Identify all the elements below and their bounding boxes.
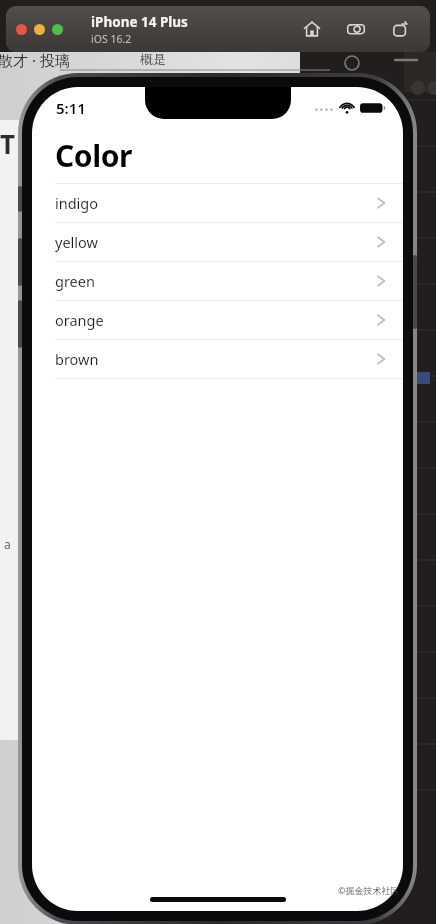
button[interactable]: yellow [32,223,403,261]
staticText: indigo [55,193,377,213]
staticText: 5:11 [56,98,86,118]
button[interactable]: Minimise [34,24,45,35]
staticText: orange [55,310,377,330]
button[interactable]: indigo [32,184,403,222]
button[interactable]: orange [32,301,403,339]
staticText: iPhone 14 Plus [91,13,188,31]
button[interactable]: brown [32,340,403,378]
staticText: Color [55,135,133,176]
staticText: brown [55,349,377,369]
button[interactable]: green [32,262,403,300]
button[interactable]: Screenshot [344,17,368,41]
button[interactable]: Home [300,17,324,41]
staticText: a [4,536,11,552]
staticText: yellow [55,232,377,252]
button[interactable]: Record [388,17,412,41]
staticText: 概是 [140,51,166,67]
button[interactable]: Close [16,24,27,35]
staticText: 散才 · 投璃 [0,50,70,70]
staticText: green [55,271,377,291]
staticText: ©掘金技术社区 [338,884,400,896]
button[interactable]: Maximise [52,24,63,35]
staticText: T [0,126,16,161]
staticText: iOS 16.2 [91,32,132,46]
